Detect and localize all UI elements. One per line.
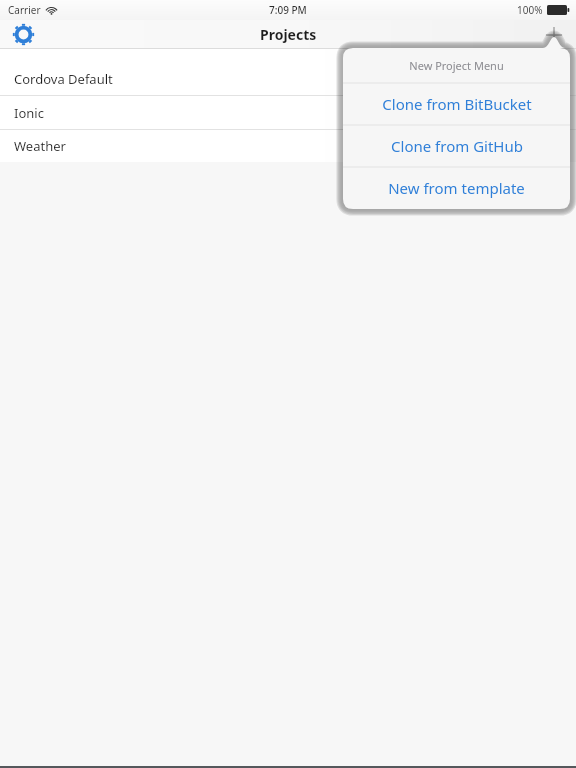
button[interactable]: New project bbox=[537, 20, 571, 49]
button[interactable]: Clone from BitBucket bbox=[343, 83, 570, 125]
staticText: Clone from BitBucket bbox=[382, 94, 532, 114]
staticText: Cordova Default bbox=[14, 70, 113, 88]
button[interactable]: Clone from GitHub bbox=[343, 125, 570, 167]
button[interactable]: New from template bbox=[343, 167, 570, 209]
staticText: New Project Menu bbox=[409, 58, 504, 73]
button[interactable]: Weather bbox=[0, 130, 576, 162]
button[interactable]: Ionic bbox=[0, 96, 576, 129]
staticText: New from template bbox=[388, 178, 525, 198]
button[interactable]: Settings bbox=[6, 20, 40, 49]
staticText: Weather bbox=[14, 137, 66, 155]
staticText: Projects bbox=[260, 25, 317, 44]
staticText: Ionic bbox=[14, 104, 44, 122]
staticText: Carrier bbox=[8, 3, 41, 17]
button[interactable]: Cordova Default bbox=[0, 62, 576, 95]
staticText: 100% bbox=[517, 3, 543, 17]
staticText: 7:09 PM bbox=[269, 3, 307, 17]
staticText: Clone from GitHub bbox=[391, 136, 523, 156]
